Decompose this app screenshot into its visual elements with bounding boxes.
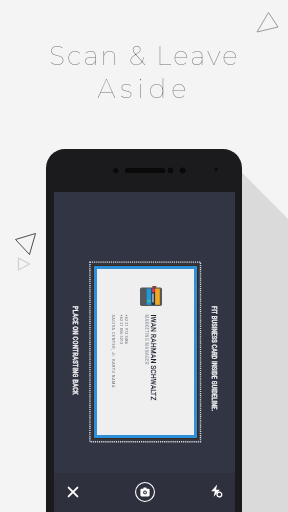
staticText: MARKETING MANAGER bbox=[143, 314, 148, 365]
button[interactable]: Flash auto bbox=[204, 479, 227, 502]
staticText: FIT BUSINESS CARD INSIDE GUIDELINE. bbox=[210, 306, 218, 412]
staticText: IWAN RAHMAN SCHWALTZ bbox=[148, 314, 157, 400]
staticText: SACIVA CENTER, Jl. KARTU NAMA bbox=[110, 314, 115, 388]
button[interactable]: Close bbox=[61, 480, 84, 503]
button[interactable]: Take photo bbox=[133, 480, 157, 504]
staticText: +62 21 856 3213 bbox=[118, 314, 123, 344]
staticText: PLACE ON CONTRASTING BACK bbox=[71, 306, 79, 395]
staticText: Scan & Leave bbox=[49, 40, 240, 72]
staticText: +62 21 912 3456 bbox=[123, 314, 128, 344]
staticText: Aside bbox=[97, 73, 192, 105]
